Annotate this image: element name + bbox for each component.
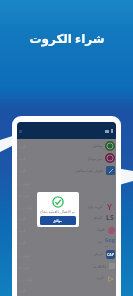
staticText: تحويل رصيد سبأفون [75,168,104,173]
staticText: Gogy [105,237,115,247]
button[interactable]: الهاتف [17,212,116,224]
staticText: كرت [19,157,26,161]
button[interactable]: يمن موبايل [17,152,116,164]
button[interactable]: نت ADSL [17,260,116,272]
staticText: موافق [53,219,63,223]
staticText: Y [107,201,113,211]
button[interactable]: نت [17,236,116,248]
staticText: كرت [19,229,26,233]
staticText: عروض [94,252,104,256]
staticText: كرت [19,169,26,173]
staticText: يمن موبايل [87,156,103,161]
staticText: الهاتف [93,216,103,220]
staticText: CAP [107,252,114,257]
staticText: الجوال [96,228,106,232]
staticText: نت ADSL [93,264,107,269]
staticText: ▷ [108,275,114,283]
staticText: كرت [19,289,26,293]
staticText: اخرى [96,276,104,280]
staticText: كروت واي [88,204,103,209]
staticText: سبأفون [92,144,103,148]
staticText: كرت [19,241,26,245]
button[interactable]: عروض [17,248,116,260]
button[interactable]: الجوال [17,224,116,236]
staticText: نت [98,240,103,244]
staticText: كرت [19,145,26,149]
staticText: كرت [19,217,26,221]
button[interactable]: تحويل رصيد سبأفون [17,164,116,176]
button[interactable]: كروت واي [17,200,116,212]
staticText: LS [106,213,114,223]
button[interactable]: موافق [40,216,76,225]
button[interactable]: اخرى [17,272,116,284]
staticText: شراء الكروت [29,30,105,46]
staticText: تم الاتصال بالعملية بنجاح [40,209,76,214]
button[interactable]: سبأفون [17,140,116,152]
